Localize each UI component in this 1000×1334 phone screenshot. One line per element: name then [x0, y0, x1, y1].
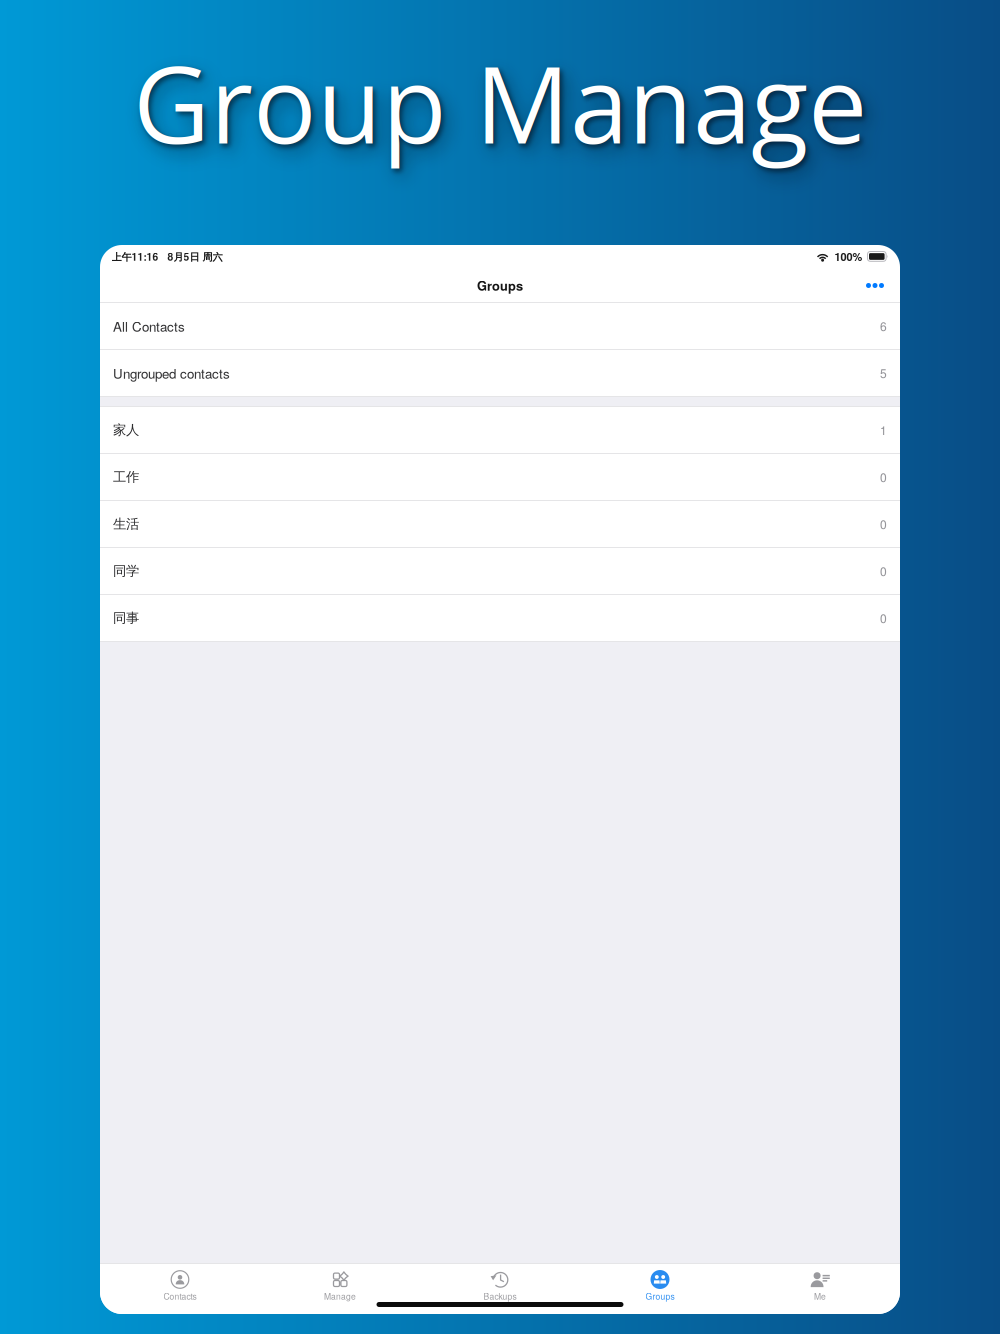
staticText: 1 [880, 421, 887, 439]
staticText: 100% [834, 249, 862, 264]
staticText: 家人 [113, 422, 139, 438]
button[interactable]: Ungrouped contacts [100, 350, 900, 397]
staticText: Group Manage [133, 30, 867, 175]
staticText: 同事 [113, 610, 139, 626]
staticText: 6 [880, 317, 887, 335]
button[interactable]: Manage [260, 1264, 420, 1314]
button[interactable]: More options [850, 268, 900, 303]
staticText: All Contacts [113, 316, 185, 336]
button[interactable]: All Contacts [100, 303, 900, 350]
button[interactable]: 家人 [100, 407, 900, 454]
staticText: 生活 [113, 516, 139, 532]
button[interactable]: 同事 [100, 595, 900, 642]
staticText: 上午11:16 8月5日 周六 [111, 249, 222, 264]
button[interactable]: Groups [580, 1264, 740, 1314]
button[interactable]: Contacts [100, 1264, 260, 1314]
staticText: 同学 [113, 563, 139, 579]
staticText: Groups [477, 276, 523, 295]
button[interactable]: 生活 [100, 501, 900, 548]
button[interactable]: 同学 [100, 548, 900, 595]
staticText: 5 [880, 364, 887, 382]
staticText: Contacts [163, 1290, 196, 1302]
staticText: Ungrouped contacts [113, 363, 230, 383]
staticText: 0 [880, 609, 887, 627]
staticText: Backups [483, 1290, 516, 1302]
staticText: 0 [880, 562, 887, 580]
button[interactable]: Backups [420, 1264, 580, 1314]
button[interactable]: Me [740, 1264, 900, 1314]
staticText: 0 [880, 515, 887, 533]
staticText: 工作 [113, 469, 139, 485]
button[interactable]: 工作 [100, 454, 900, 501]
staticText: 0 [880, 468, 887, 486]
staticText: Me [814, 1290, 826, 1302]
staticText: Manage [324, 1290, 356, 1302]
staticText: Groups [645, 1290, 674, 1302]
